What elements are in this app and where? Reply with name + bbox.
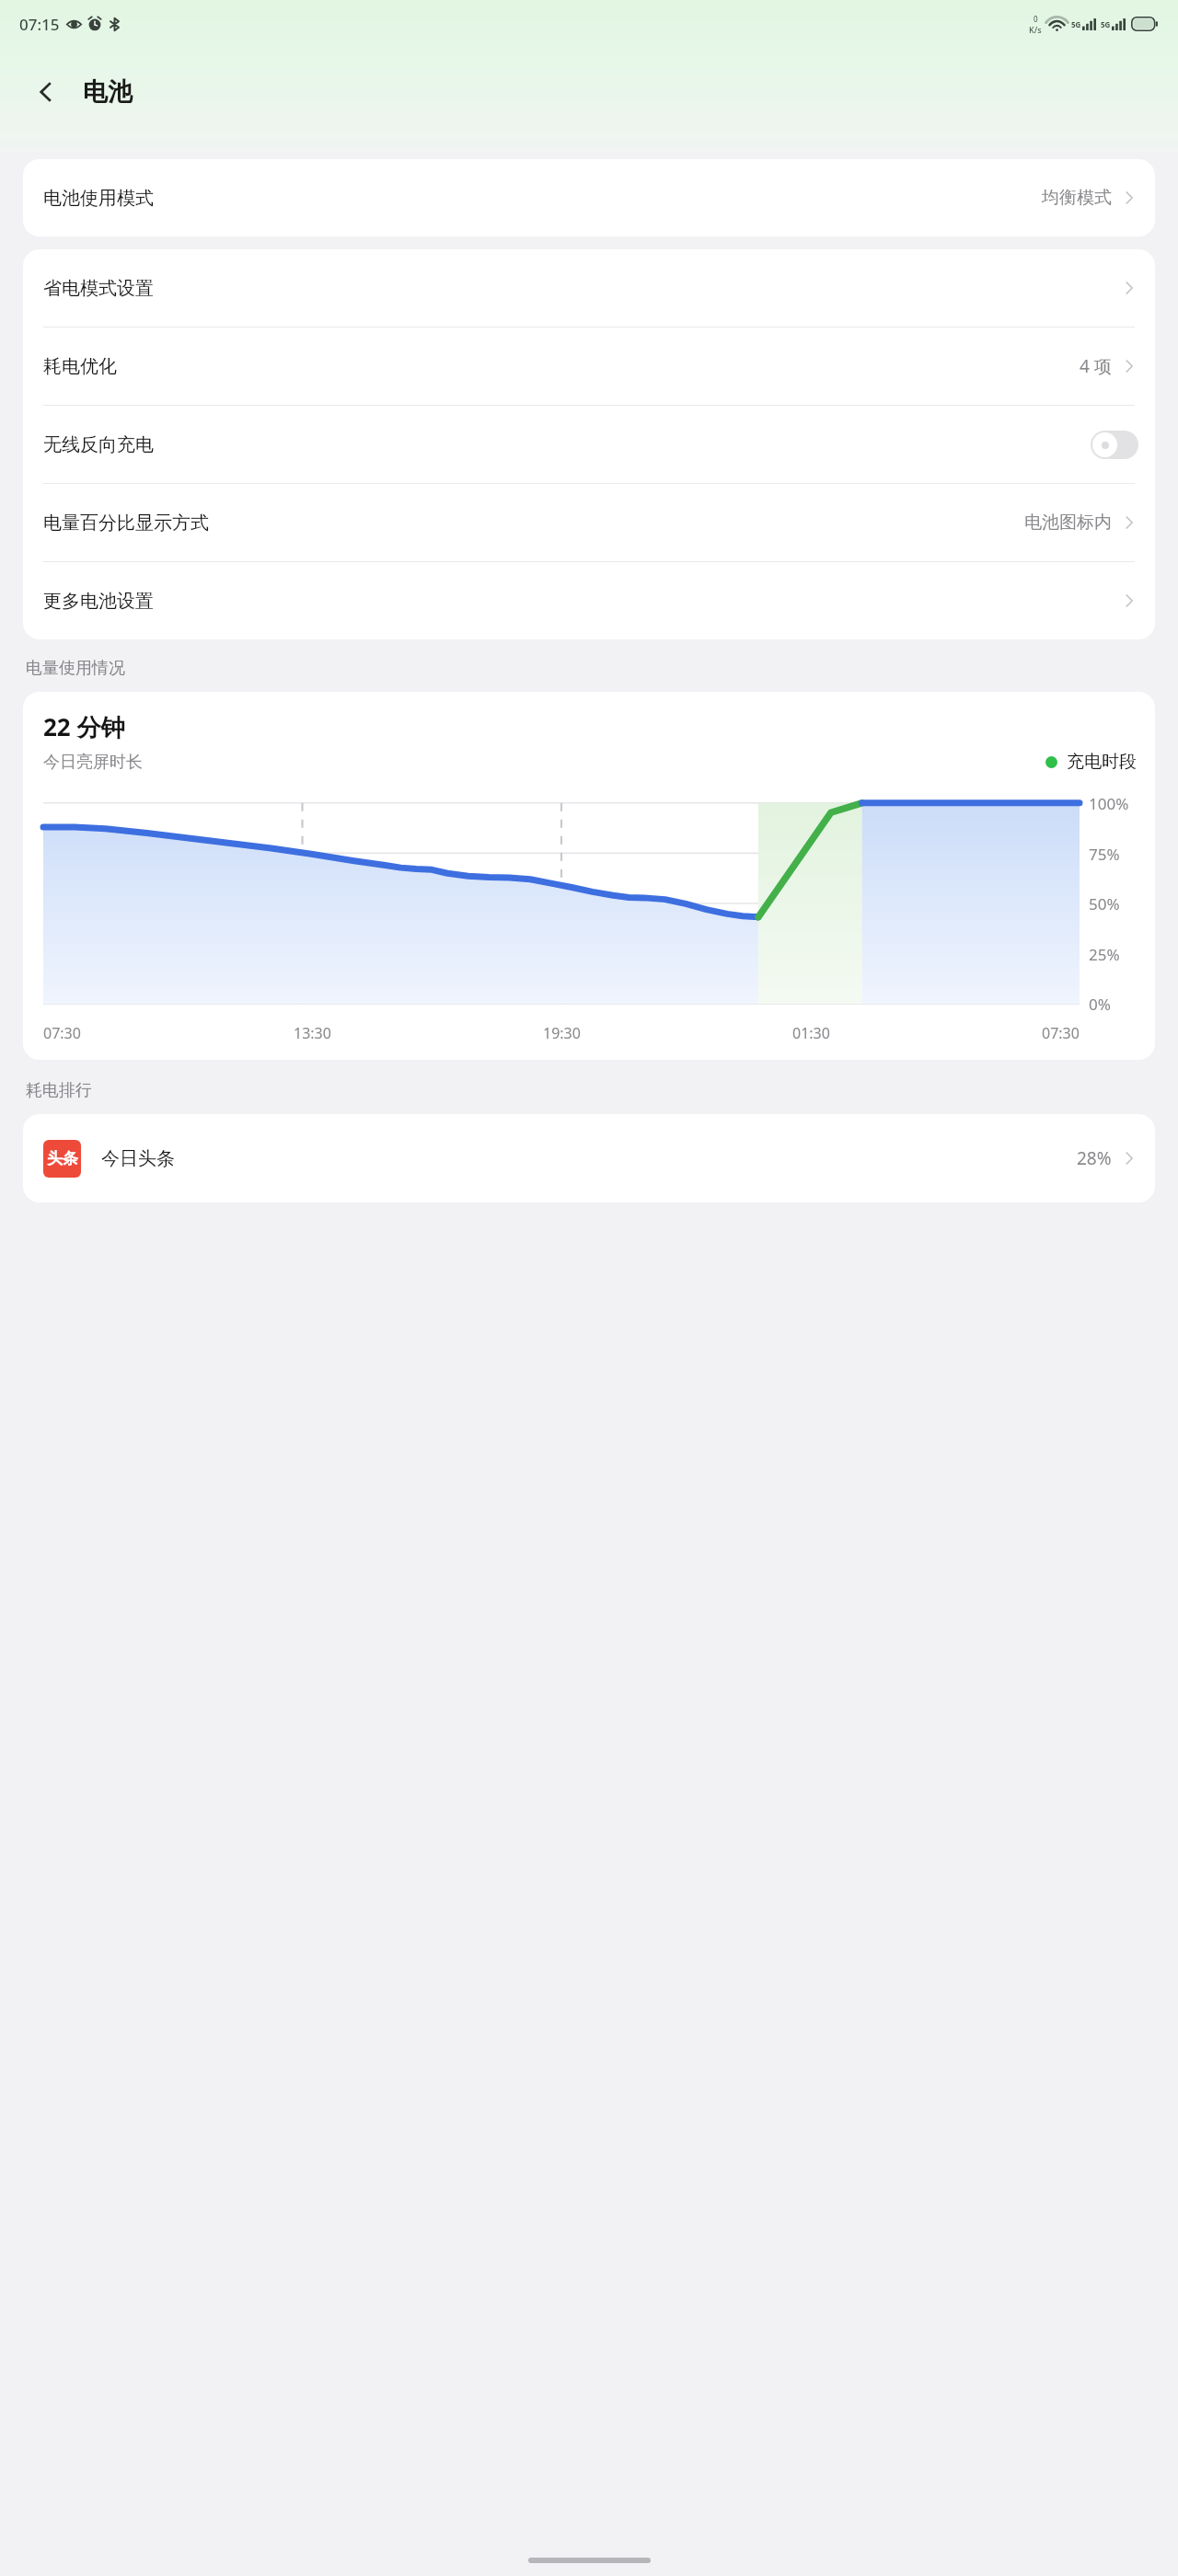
staticText: 5G	[1071, 19, 1081, 29]
staticText: 01:30	[792, 1023, 830, 1043]
staticText: 07:15	[19, 14, 60, 35]
staticText: 省电模式设置	[43, 277, 154, 300]
staticText: 均衡模式	[1042, 187, 1112, 209]
staticText: 0	[1034, 14, 1038, 24]
staticText: 今日头条	[101, 1147, 175, 1170]
staticText: 耗电优化	[43, 355, 117, 378]
staticText: 今日亮屏时长	[43, 752, 143, 773]
staticText: 07:30	[43, 1023, 81, 1043]
button[interactable]: 省电模式设置	[23, 249, 1155, 327]
staticText: 19:30	[543, 1023, 581, 1043]
staticText: 13:30	[294, 1023, 331, 1043]
button[interactable]: 电池使用模式	[23, 159, 1155, 236]
staticText: 22 分钟	[43, 710, 125, 743]
staticText: 电量百分比显示方式	[43, 512, 209, 535]
button[interactable]: 更多电池设置	[23, 562, 1155, 639]
staticText: 头条	[47, 1149, 78, 1168]
staticText: K/s	[1029, 24, 1042, 35]
button[interactable]: 无线反向充电	[23, 406, 1155, 483]
button[interactable]: 耗电优化	[23, 328, 1155, 405]
staticText: 电池图标内	[1024, 512, 1112, 534]
staticText: 电量使用情况	[26, 658, 125, 679]
staticText: 100%	[1089, 793, 1129, 813]
staticText: 4 项	[1080, 354, 1112, 378]
staticText: 5G	[1101, 19, 1111, 29]
staticText: 耗电排行	[26, 1080, 92, 1101]
button[interactable]: 电量百分比显示方式	[23, 484, 1155, 561]
staticText: 电池	[83, 76, 133, 108]
button[interactable]: 返回	[22, 68, 70, 116]
button[interactable]: 无线反向充电开关	[1091, 431, 1138, 459]
staticText: 75%	[1089, 844, 1120, 864]
button[interactable]: 22 分钟	[23, 692, 1155, 1060]
staticText: 更多电池设置	[43, 590, 154, 613]
staticText: 50%	[1089, 893, 1120, 914]
staticText: 25%	[1089, 944, 1120, 964]
staticText: 28%	[1077, 1146, 1112, 1170]
button[interactable]: 头条	[23, 1114, 1155, 1202]
staticText: 0%	[1089, 994, 1111, 1014]
staticText: 无线反向充电	[43, 433, 154, 456]
staticText: 07:30	[1042, 1023, 1080, 1043]
staticText: 电池使用模式	[43, 187, 154, 210]
staticText: 充电时段	[1067, 751, 1137, 773]
